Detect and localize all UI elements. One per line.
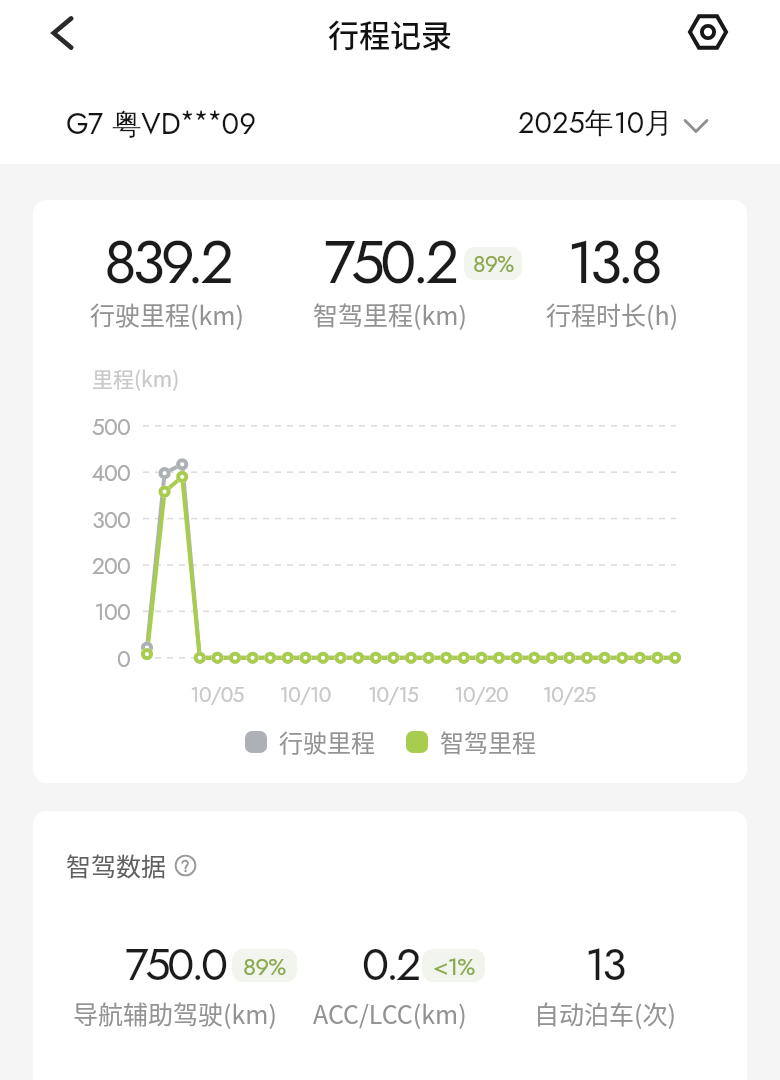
staticText: 89% xyxy=(473,247,514,280)
button[interactable]: 智驾数据 xyxy=(66,847,196,883)
staticText: 839.2 xyxy=(104,219,230,306)
staticText: 400 xyxy=(78,456,130,489)
staticText: 500 xyxy=(78,410,130,443)
staticText: 0 xyxy=(78,642,130,675)
staticText: 10/10 xyxy=(260,680,350,710)
staticText: ACC/LCC(km) xyxy=(313,995,467,1031)
staticText: 200 xyxy=(78,549,130,582)
staticText: 行程记录 xyxy=(328,11,452,56)
staticText: 导航辅助驾驶(km) xyxy=(73,995,277,1031)
staticText: 300 xyxy=(78,503,130,536)
staticText: <1% xyxy=(433,949,475,982)
staticText: 10/25 xyxy=(524,680,614,710)
staticText: 10/20 xyxy=(436,680,526,710)
staticText: 89% xyxy=(243,949,286,982)
staticText: 2025年10月 xyxy=(518,102,674,144)
staticText: 0.2 xyxy=(362,932,418,997)
staticText: 13 xyxy=(585,932,624,997)
staticText: 行程时长(h) xyxy=(546,296,679,332)
staticText: 行驶里程(km) xyxy=(90,296,244,332)
staticText: 里程(km) xyxy=(92,363,180,393)
button[interactable]: Settings xyxy=(679,3,737,61)
staticText: 智驾里程 xyxy=(440,724,536,759)
staticText: 750.2 xyxy=(324,219,455,306)
staticText: 智驾里程(km) xyxy=(313,296,467,332)
staticText: 10/15 xyxy=(348,680,438,710)
staticText: 自动泊车(次) xyxy=(534,995,676,1031)
staticText: 10/05 xyxy=(172,680,262,710)
staticText: 13.8 xyxy=(567,219,659,306)
button[interactable]: 2025年10月 xyxy=(518,102,709,144)
staticText: 行驶里程 xyxy=(279,724,375,759)
staticText: 750.0 xyxy=(125,932,225,997)
button[interactable]: Back xyxy=(34,4,91,61)
staticText: 100 xyxy=(78,595,130,628)
staticText: G7 粤VD***09 xyxy=(66,100,257,145)
staticText: 智驾数据 xyxy=(66,847,167,883)
